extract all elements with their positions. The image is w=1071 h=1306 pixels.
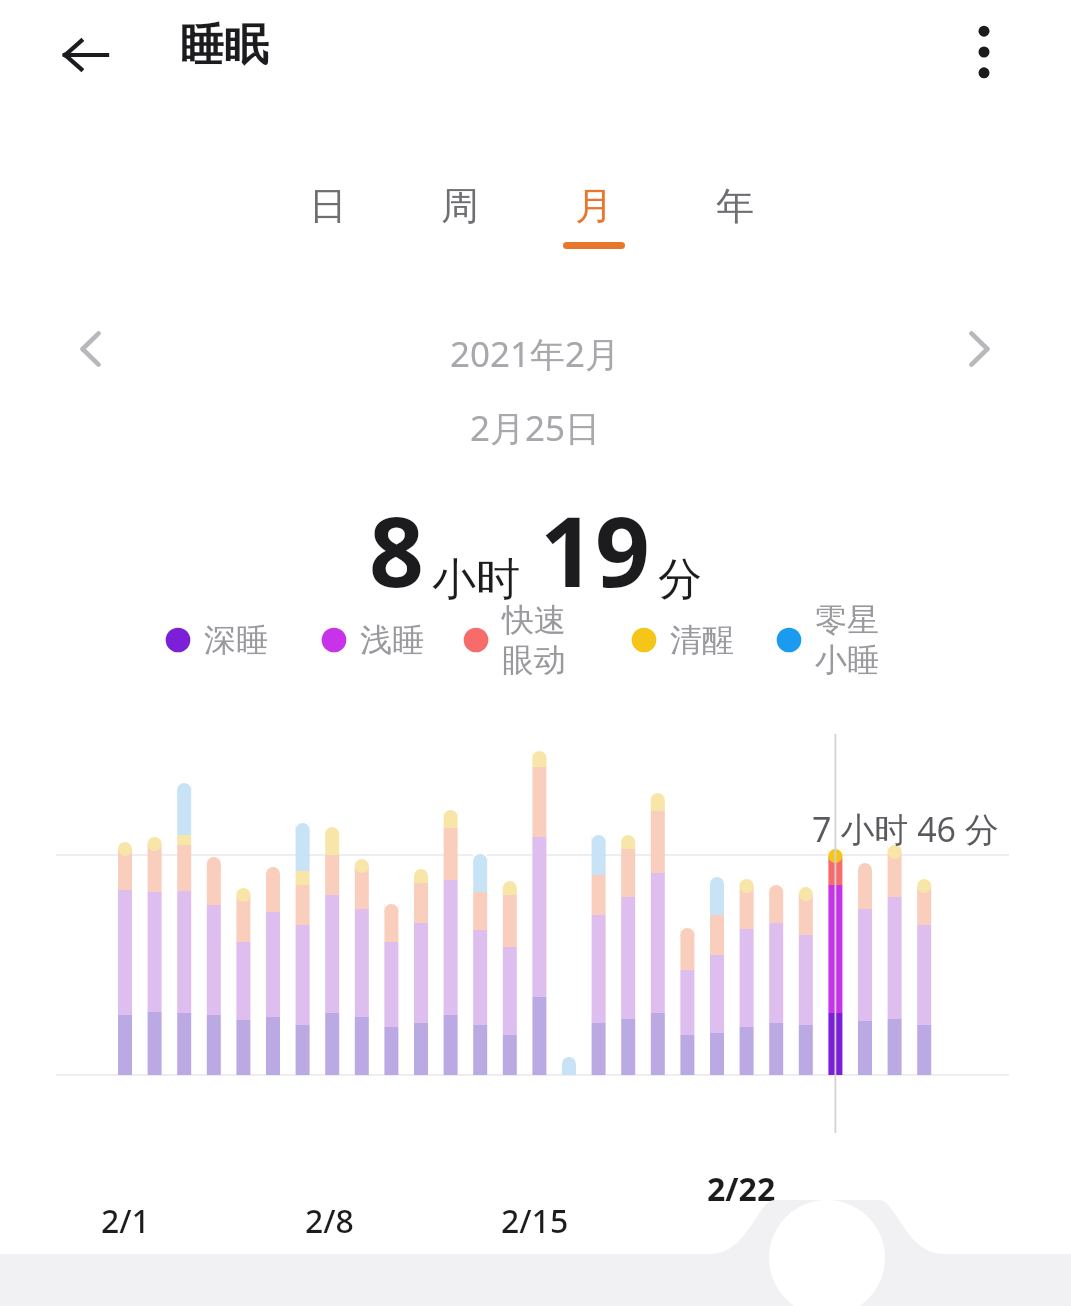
button[interactable]: 零星 [775, 600, 879, 680]
staticText: 深睡 [204, 620, 268, 660]
staticText: 眼动 [502, 640, 566, 680]
staticText: 零星 [815, 600, 879, 640]
button[interactable]: Next month [936, 306, 1022, 392]
staticText: 月 [575, 182, 613, 230]
staticText: 浅睡 [360, 620, 424, 660]
button[interactable]: 年 [677, 182, 793, 278]
staticText: 清醒 [670, 620, 734, 660]
button[interactable]: 月 [536, 182, 652, 278]
staticText: 7 小时 46 分 [812, 806, 999, 852]
staticText: 2021年2月 [450, 330, 621, 378]
button[interactable]: Previous month [48, 306, 134, 392]
button[interactable]: 深睡 [164, 620, 268, 660]
button[interactable]: More options [944, 12, 1024, 92]
button[interactable]: 清醒 [630, 620, 734, 660]
staticText: 2月25日 [470, 404, 601, 452]
staticText: 周 [441, 182, 479, 230]
button[interactable]: Monthly sleep chart [0, 726, 1071, 1146]
staticText: 快速 [502, 600, 566, 640]
staticText: 小睡 [815, 640, 879, 680]
staticText: 日 [309, 182, 347, 230]
button[interactable]: 周 [402, 182, 518, 278]
staticText: 19 [540, 484, 650, 615]
staticText: 睡眠 [180, 18, 268, 73]
button[interactable]: 日 [270, 182, 386, 278]
staticText: 2/15 [501, 1199, 569, 1243]
staticText: 2/1 [101, 1199, 150, 1243]
button[interactable]: 快速 [462, 600, 566, 680]
button[interactable]: Back [52, 22, 118, 88]
staticText: 小时 [432, 552, 520, 607]
staticText: 2/22 [707, 1167, 776, 1211]
staticText: 分 [658, 552, 702, 607]
button[interactable]: 浅睡 [320, 620, 424, 660]
staticText: 2/8 [305, 1199, 354, 1243]
staticText: 8 [369, 484, 424, 615]
staticText: 年 [716, 182, 754, 230]
